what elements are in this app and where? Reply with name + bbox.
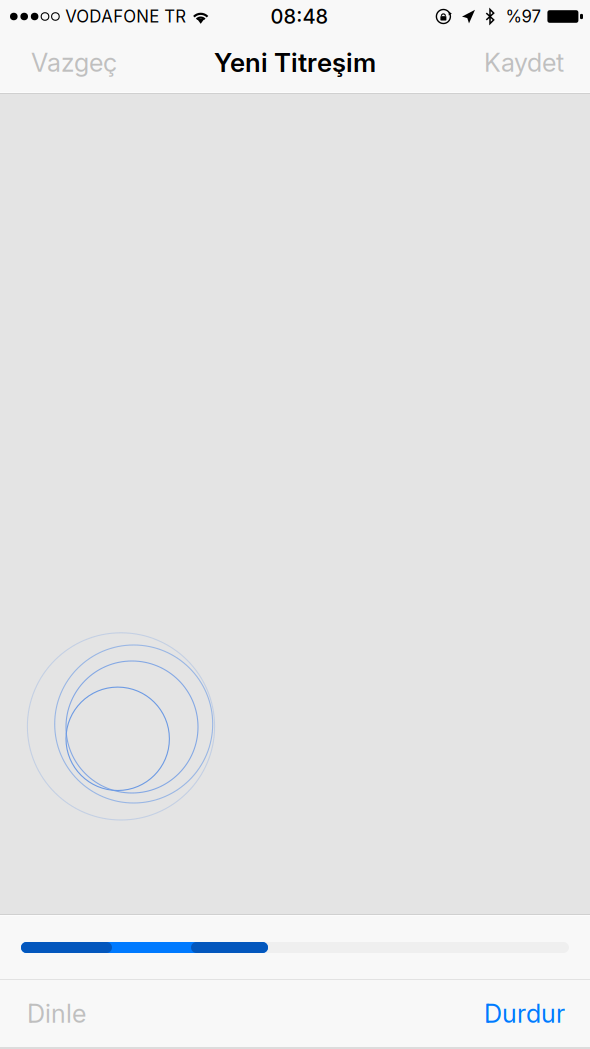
staticText: Kaydet [484, 47, 564, 78]
staticText: Durdur [484, 998, 565, 1029]
button[interactable]: Dinle [10, 980, 103, 1047]
staticText: VODAFONE TR [65, 6, 186, 27]
button[interactable]: Vazgeç [17, 33, 131, 92]
staticText: %97 [505, 6, 541, 27]
staticText: 08:48 [270, 4, 328, 29]
button[interactable]: Durdur [467, 980, 582, 1047]
staticText: Vazgeç [31, 47, 117, 78]
button[interactable]: Kaydet [470, 33, 578, 92]
staticText: Yeni Titreşim [214, 47, 376, 78]
staticText: Dinle [27, 998, 86, 1029]
